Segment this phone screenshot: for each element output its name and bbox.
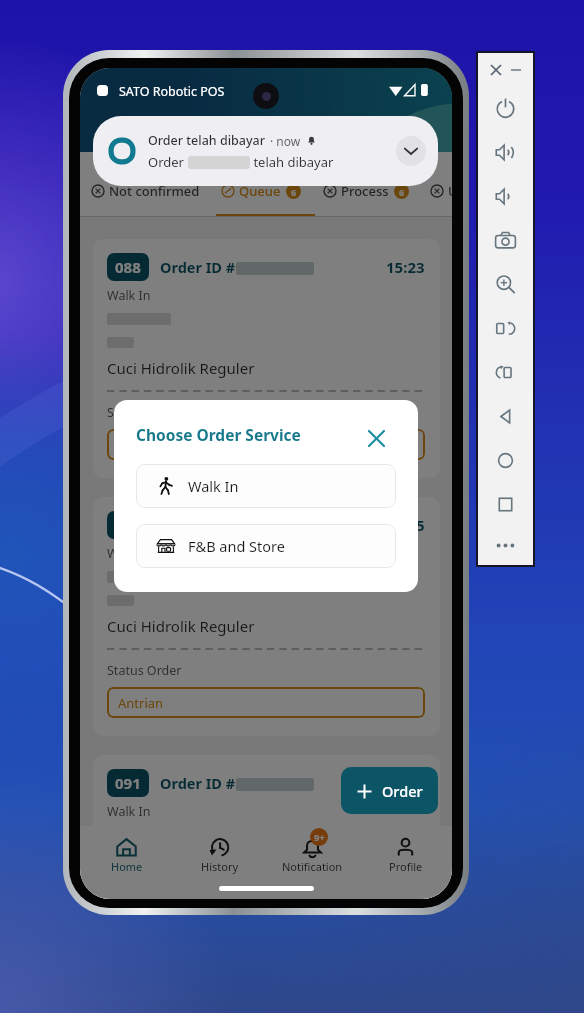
button[interactable]: Overview	[478, 482, 533, 526]
button[interactable]: 091	[93, 755, 440, 899]
staticText: 15:25	[386, 515, 425, 535]
button[interactable]: Take screenshot	[478, 218, 533, 262]
staticText: Walk In	[107, 545, 151, 562]
button[interactable]: Home	[80, 837, 173, 881]
button[interactable]: Rotate right	[478, 350, 533, 394]
staticText: Status Order	[107, 404, 182, 421]
staticText: F&B and Store	[188, 536, 285, 556]
staticText: U	[448, 182, 452, 200]
staticText: Order ID #	[160, 515, 236, 535]
button[interactable]: Order	[341, 767, 438, 814]
button[interactable]: History	[173, 837, 266, 881]
staticText: Cuci Hidrolik Reguler	[107, 616, 255, 636]
staticText: 15:23	[386, 257, 425, 277]
button[interactable]: Minimize	[506, 60, 526, 80]
staticText: History	[201, 859, 239, 874]
button[interactable]: Volume down	[478, 174, 533, 218]
staticText: telah dibayar	[250, 153, 334, 171]
button[interactable]: Order telah dibayar	[93, 116, 438, 186]
button[interactable]: Queue	[221, 178, 301, 204]
staticText: Cuci Hidrolik Reguler	[107, 358, 255, 378]
staticText: · now	[270, 133, 301, 149]
staticText: Notification	[282, 859, 343, 874]
button[interactable]: U	[430, 178, 452, 204]
staticText: Not confirmed	[109, 182, 200, 200]
button[interactable]: 090	[93, 497, 440, 736]
button[interactable]: Zoom	[478, 262, 533, 306]
staticText: Queue	[239, 182, 281, 200]
staticText: Order	[382, 781, 423, 801]
button[interactable]: Close	[357, 419, 395, 457]
staticText: Order ID #	[160, 773, 236, 793]
button[interactable]: Rotate left	[478, 306, 533, 350]
button[interactable]: Not confirmed	[91, 178, 200, 204]
staticText: Choose Order Service	[136, 424, 301, 445]
staticText: 6	[399, 186, 405, 198]
staticText: 9+	[314, 831, 325, 844]
button[interactable]: Home	[478, 438, 533, 482]
button[interactable]: 088	[93, 239, 440, 478]
button[interactable]: 9+	[266, 837, 359, 881]
button[interactable]: Volume up	[478, 130, 533, 174]
staticText: Order telah dibayar	[148, 132, 265, 149]
staticText: 088	[115, 257, 141, 277]
staticText: Order	[148, 153, 188, 171]
staticText: Antrian	[118, 436, 164, 454]
staticText: Status Order	[107, 662, 182, 679]
button[interactable]: Power	[478, 86, 533, 130]
button[interactable]: F&B and Store	[136, 524, 396, 568]
staticText: Walk In	[107, 803, 151, 820]
button[interactable]: More options	[478, 526, 533, 565]
staticText: Walk In	[107, 287, 151, 304]
button[interactable]: Process	[323, 178, 409, 204]
button[interactable]: Profile	[359, 837, 452, 881]
button[interactable]: Walk In	[136, 464, 396, 508]
staticText: Home	[111, 859, 143, 874]
staticText: 091	[115, 773, 141, 793]
staticText: Profile	[389, 859, 423, 874]
button[interactable]: Expand notification	[396, 136, 426, 166]
staticText: Walk In	[188, 476, 239, 496]
staticText: SATO Robotic POS	[119, 83, 225, 100]
staticText: 6	[291, 186, 297, 198]
staticText: Antrian	[118, 694, 164, 712]
staticText: Process	[341, 182, 389, 200]
button[interactable]: Close emulator	[486, 60, 506, 80]
button[interactable]: Back	[478, 394, 533, 438]
staticText: Order ID #	[160, 257, 236, 277]
